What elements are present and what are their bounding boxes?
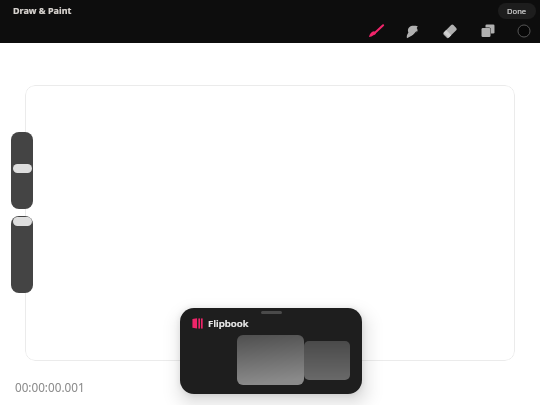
button[interactable]: Eraser	[436, 18, 464, 44]
button[interactable]: Brush	[361, 18, 389, 44]
button[interactable]: Done	[498, 3, 536, 19]
staticText: 00:00:00.001	[15, 379, 85, 395]
button[interactable]: Brush size	[11, 132, 33, 209]
button[interactable]: Frame	[237, 335, 304, 385]
button[interactable]: Opacity	[11, 216, 33, 293]
button[interactable]: Smudge	[398, 18, 426, 44]
button[interactable]: Color	[510, 18, 538, 44]
staticText: Draw & Paint	[13, 4, 72, 16]
staticText: Flipbook	[208, 317, 249, 330]
button[interactable]: Layers	[474, 18, 502, 44]
staticText: Done	[507, 6, 527, 16]
